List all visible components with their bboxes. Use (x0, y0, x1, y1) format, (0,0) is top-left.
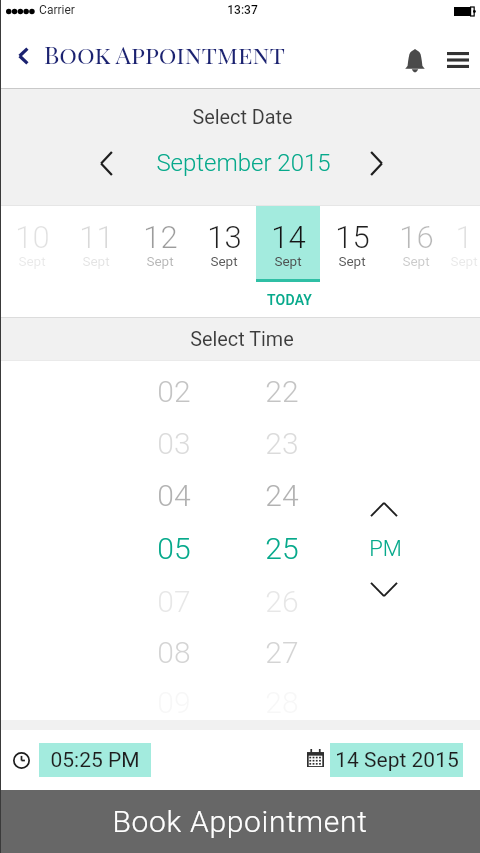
button[interactable]: TODAY (219, 283, 359, 317)
button[interactable]: Back (5, 38, 41, 74)
staticText: 11 (79, 219, 114, 255)
button[interactable]: 22 (237, 369, 327, 413)
staticText: 10 (15, 219, 50, 255)
staticText: Sept (210, 253, 238, 269)
staticText: 12 (143, 219, 178, 255)
button[interactable]: Select date (295, 738, 335, 778)
staticText: 05 (157, 531, 191, 566)
button[interactable]: 16 (384, 206, 448, 282)
button[interactable]: Previous period (362, 571, 406, 607)
staticText: Sept (146, 253, 174, 269)
button[interactable]: 04 (129, 473, 219, 517)
button[interactable]: Previous month (86, 143, 126, 183)
staticText: Carrier (39, 3, 75, 17)
staticText: Select Time (190, 328, 294, 351)
button[interactable]: 05:25 PM (39, 743, 151, 777)
staticText: 14 (271, 219, 306, 255)
staticText: 05:25 PM (50, 748, 140, 773)
staticText: Sept (82, 253, 110, 269)
button[interactable]: Menu (438, 40, 478, 80)
button[interactable]: Next period (362, 491, 406, 527)
staticText: Sept (274, 253, 302, 269)
staticText: 17 (448, 219, 480, 255)
button[interactable]: 13 (192, 206, 256, 282)
staticText: 16 (399, 219, 434, 255)
button[interactable]: 27 (237, 630, 327, 674)
button[interactable]: 25 (237, 526, 327, 570)
button[interactable]: Book Appointment (0, 790, 480, 853)
button[interactable]: Next month (356, 143, 396, 183)
button[interactable]: Notifications (395, 40, 435, 80)
staticText: 27 (265, 635, 299, 670)
staticText: Sept (402, 253, 430, 269)
button[interactable]: PM (340, 527, 430, 571)
button[interactable]: 05 (129, 526, 219, 570)
staticText: 13:37 (227, 3, 258, 17)
staticText: Book Appointment (44, 37, 285, 70)
button[interactable]: 28 (237, 680, 327, 724)
staticText: Select Date (192, 106, 293, 129)
staticText: 02 (157, 374, 191, 409)
staticText: Sept (18, 253, 46, 269)
staticText: 22 (265, 374, 299, 409)
staticText: TODAY (267, 292, 312, 308)
button[interactable]: 24 (237, 473, 327, 517)
button[interactable]: 23 (237, 421, 327, 465)
staticText: 07 (157, 584, 191, 619)
button[interactable]: 09 (129, 680, 219, 724)
staticText: Sept (338, 253, 366, 269)
button[interactable]: 08 (129, 630, 219, 674)
staticText: Book Appointment (112, 804, 368, 839)
staticText: 15 (335, 219, 370, 255)
button[interactable]: 07 (129, 579, 219, 623)
staticText: September 2015 (156, 149, 331, 177)
button[interactable]: 10 (0, 206, 64, 282)
button[interactable]: 11 (64, 206, 128, 282)
button[interactable]: 02 (129, 369, 219, 413)
staticText: 03 (157, 426, 191, 461)
button[interactable]: 17 (448, 206, 480, 282)
staticText: 04 (157, 478, 191, 513)
button[interactable]: 12 (128, 206, 192, 282)
staticText: 25 (265, 531, 299, 566)
staticText: 14 Sept 2015 (335, 748, 459, 773)
button[interactable]: 03 (129, 421, 219, 465)
staticText: 23 (265, 426, 299, 461)
staticText: 24 (265, 478, 299, 513)
button[interactable]: 15 (320, 206, 384, 282)
staticText: Sept (450, 253, 478, 269)
button[interactable]: 14 Sept 2015 (330, 743, 463, 777)
button[interactable]: 14 (256, 206, 320, 282)
staticText: PM (369, 536, 402, 562)
button[interactable]: Select time (1, 740, 41, 780)
staticText: 08 (157, 635, 191, 670)
button[interactable]: 26 (237, 579, 327, 623)
staticText: 26 (265, 584, 299, 619)
staticText: 13 (207, 219, 242, 255)
